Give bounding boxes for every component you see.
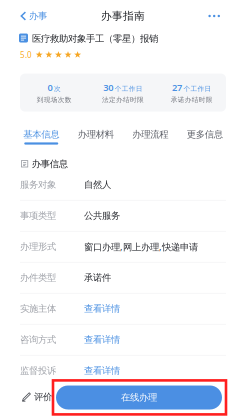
staticText: 医疗救助对象手工（零星）报销 [32,33,158,44]
staticText: 办事 [29,10,47,22]
staticText: 查看详情 [84,303,120,314]
staticText: 查看详情 [84,365,120,376]
button[interactable]: 更多信息 [177,129,232,145]
button[interactable]: 在线办理 [56,385,222,409]
button[interactable]: 办理流程 [123,129,177,145]
button[interactable]: 事项类型 [0,201,246,232]
staticText: 服务对象 [20,179,56,190]
button[interactable]: More options [200,0,246,32]
staticText: 更多信息 [187,129,223,140]
staticText: 到现场次数 [37,96,72,104]
staticText: 自然人 [84,179,111,190]
button[interactable]: 办件类型 [0,263,246,294]
button[interactable]: 实施主体 [0,294,246,325]
staticText: 承诺件 [84,272,111,283]
staticText: 个工作日 [183,85,211,93]
staticText: 在线办理 [121,392,157,403]
staticText: 30 [103,81,113,94]
staticText: 办理流程 [132,129,168,140]
staticText: 事项类型 [20,210,56,221]
staticText: 次 [54,85,61,93]
button[interactable]: 办理材料 [68,129,123,145]
staticText: 27 [172,81,182,94]
staticText: 窗口办理,网上办理,快递申请 [84,241,198,253]
staticText: 评价 [34,391,52,403]
button[interactable]: 服务对象 [0,170,246,201]
staticText: 监督投诉 [20,365,56,376]
staticText: 办理材料 [78,129,114,140]
staticText: 办事信息 [32,158,68,170]
staticText: 法定办结时限 [102,96,144,104]
staticText: 实施主体 [20,303,56,314]
button[interactable]: 基本信息 [14,129,68,145]
button[interactable]: 办理形式 [0,232,246,263]
button[interactable]: 监督投诉 [0,356,246,387]
staticText: 0 [48,81,53,94]
button[interactable]: 评价 [0,382,54,412]
staticText: 查看详情 [84,334,120,345]
staticText: 基本信息 [23,129,59,140]
staticText: 办事指南 [101,9,145,22]
staticText: 办理形式 [20,241,56,252]
staticText: 承诺办结时限 [171,96,213,104]
button[interactable]: 办事 [0,0,55,32]
staticText: 办件类型 [20,272,56,283]
button[interactable]: 咨询方式 [0,325,246,356]
staticText: 公共服务 [84,210,120,221]
staticText: 个工作日 [115,85,143,93]
staticText: 咨询方式 [20,334,56,345]
staticText: 5.0 [20,49,32,60]
